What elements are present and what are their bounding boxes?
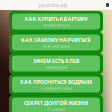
staticText: и сохранить силы	[40, 85, 71, 91]
staticText: каждое утро	[45, 64, 67, 70]
button[interactable]: КАК КУПИТЬ КВАРТИРУ	[9, 11, 103, 32]
button[interactable]: КАК САМОМУ НАУЧИТЬСЯ	[9, 32, 103, 53]
staticText: рецепты.рф	[38, 1, 67, 9]
button[interactable]: КАК ПРОСНУТЬСЯ БОДРЫМ	[9, 74, 103, 95]
staticText: СЕКРЕТ ДОЛГОЙ ЖИЗНИ	[24, 99, 88, 106]
staticText: ЗАЧЕМ ЕСТЬ ХЛЕБ	[33, 57, 79, 64]
staticText: КАК КУПИТЬ КВАРТИРУ	[24, 15, 87, 22]
button[interactable]: СЕКРЕТ ДОЛГОЙ ЖИЗНИ	[9, 95, 103, 112]
staticText: за свои деньги	[43, 22, 69, 28]
staticText: КАК ПРОСНУТЬСЯ БОДРЫМ	[20, 78, 92, 85]
staticText: от учёных	[47, 106, 65, 112]
button[interactable]: Menu	[106, 3, 112, 7]
staticText: КАК САМОМУ НАУЧИТЬСЯ	[21, 36, 91, 43]
staticText: печь хлеб дома	[42, 43, 69, 49]
button[interactable]: ЗАЧЕМ ЕСТЬ ХЛЕБ	[9, 53, 103, 74]
